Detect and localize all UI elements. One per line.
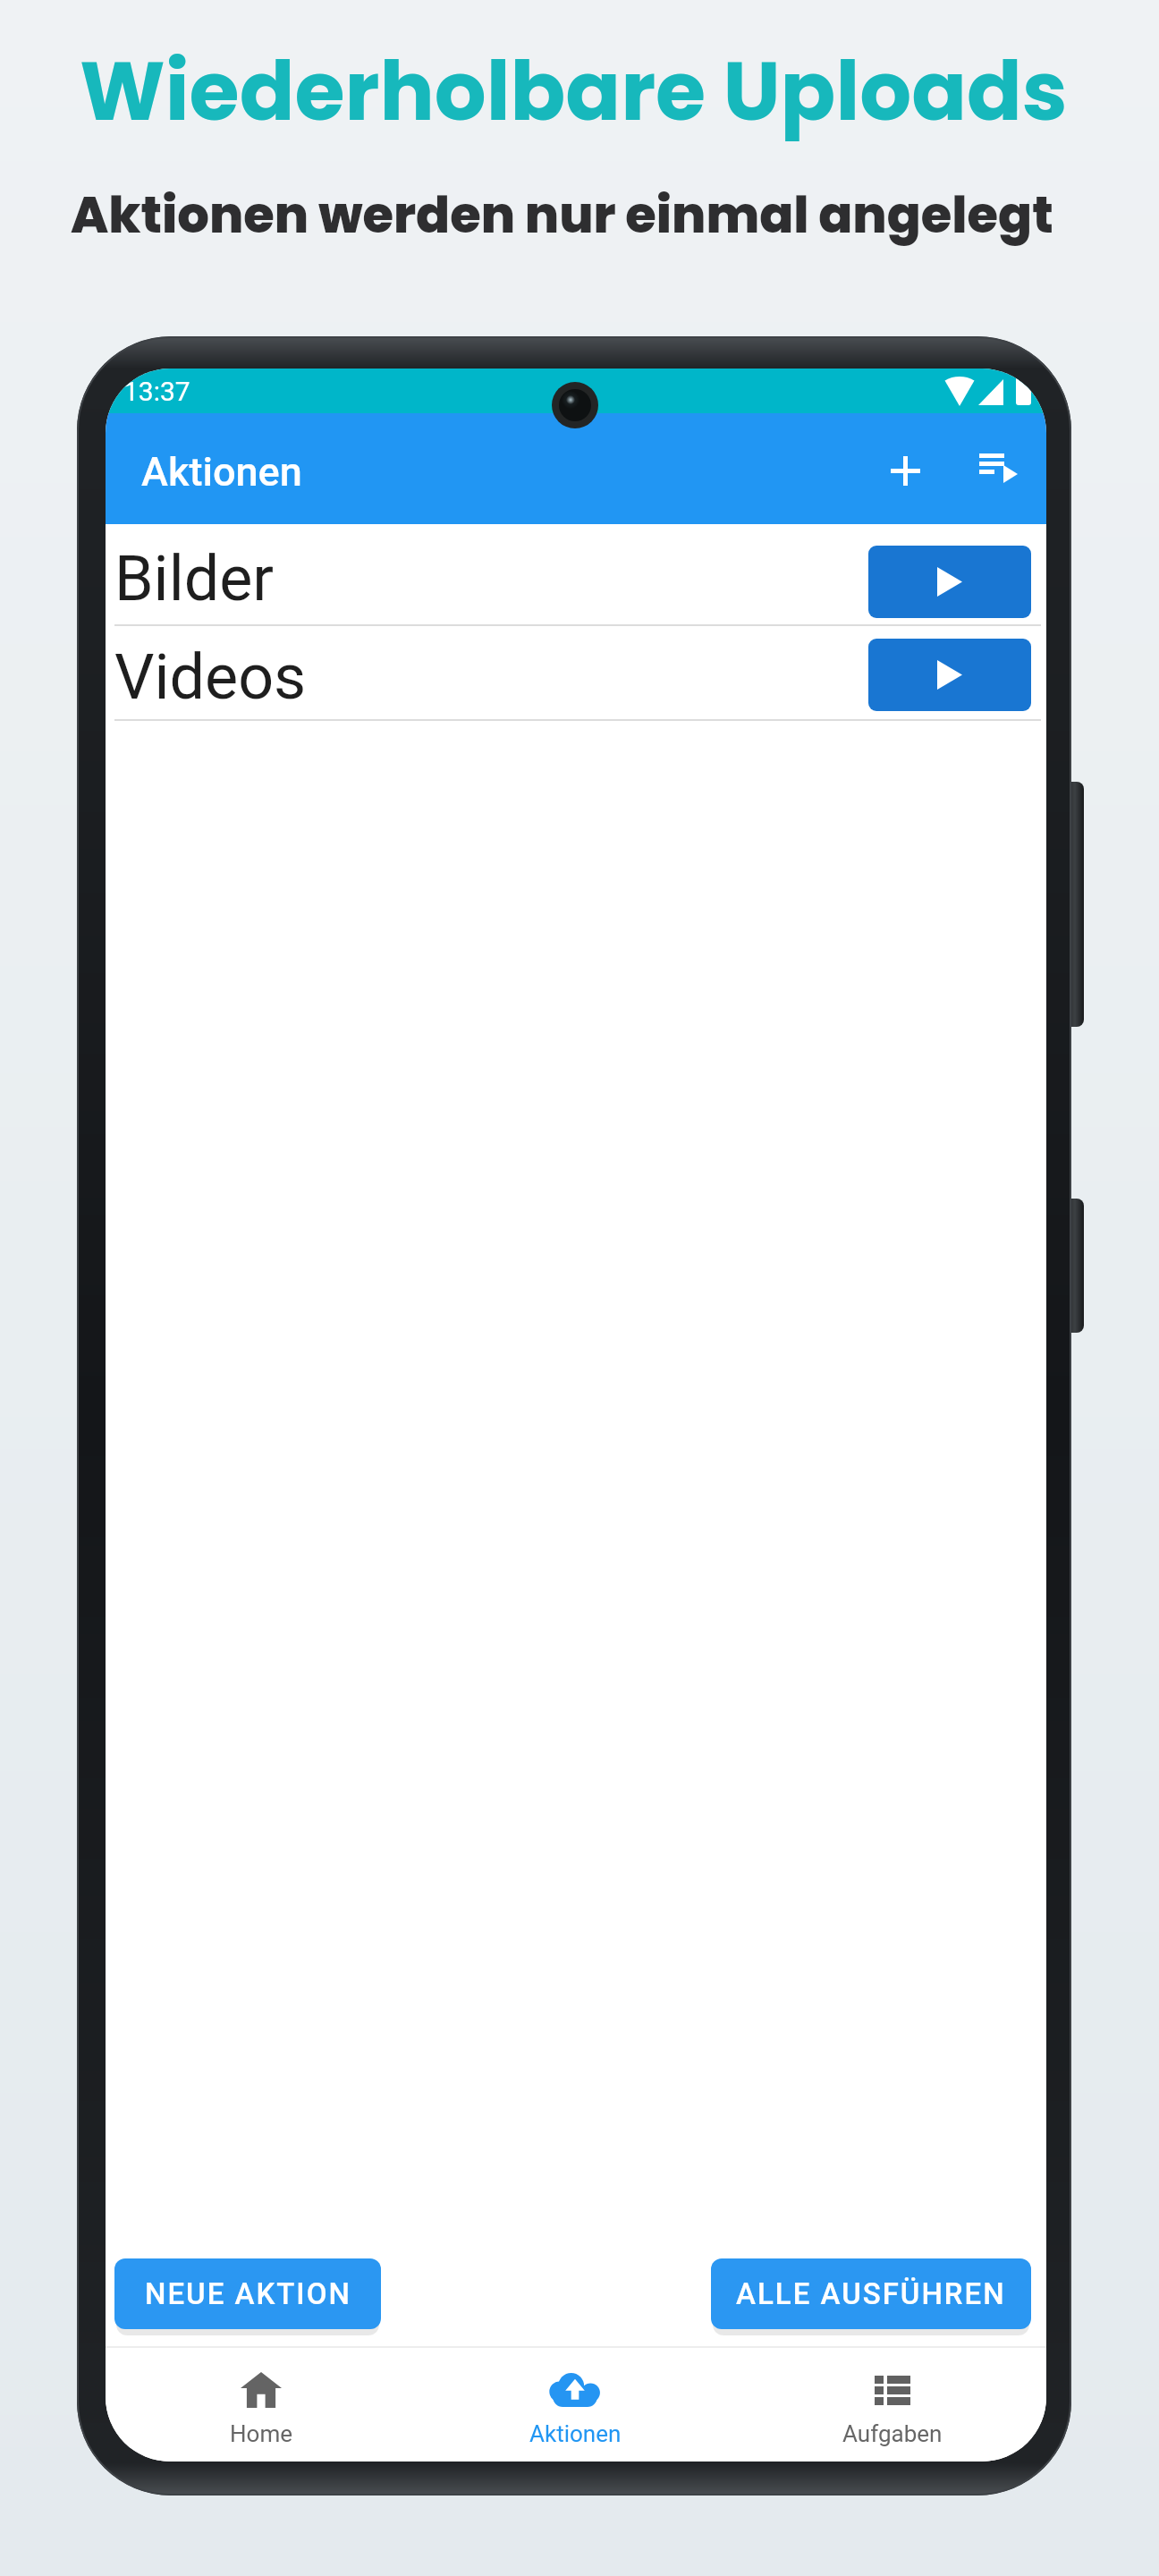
staticText: Aktionen bbox=[141, 448, 302, 496]
button[interactable]: Aktionen bbox=[503, 2364, 647, 2453]
button[interactable] bbox=[868, 546, 1031, 618]
button[interactable] bbox=[868, 639, 1031, 711]
staticText: Home bbox=[230, 2420, 292, 2447]
staticText: Aufgaben bbox=[842, 2420, 943, 2447]
button[interactable]: Aufgaben bbox=[821, 2364, 964, 2453]
button[interactable] bbox=[964, 435, 1036, 506]
button[interactable]: Videos bbox=[106, 626, 1046, 719]
staticText: Wiederholbare Uploads bbox=[80, 34, 1068, 148]
staticText: 13:37 bbox=[123, 376, 190, 407]
staticText: NEUE AKTION bbox=[145, 2276, 351, 2311]
staticText: Aktionen bbox=[529, 2420, 622, 2447]
staticText: Aktionen werden nur einmal angelegt bbox=[71, 180, 1053, 250]
button[interactable]: ALLE AUSFÜHREN bbox=[711, 2258, 1031, 2329]
button[interactable]: NEUE AKTION bbox=[114, 2258, 381, 2329]
button[interactable] bbox=[869, 435, 941, 506]
button[interactable]: Bilder bbox=[106, 524, 1046, 624]
staticText: Videos bbox=[114, 640, 307, 714]
button[interactable]: Home bbox=[190, 2364, 333, 2453]
staticText: ALLE AUSFÜHREN bbox=[736, 2276, 1006, 2311]
staticText: Bilder bbox=[114, 542, 274, 615]
